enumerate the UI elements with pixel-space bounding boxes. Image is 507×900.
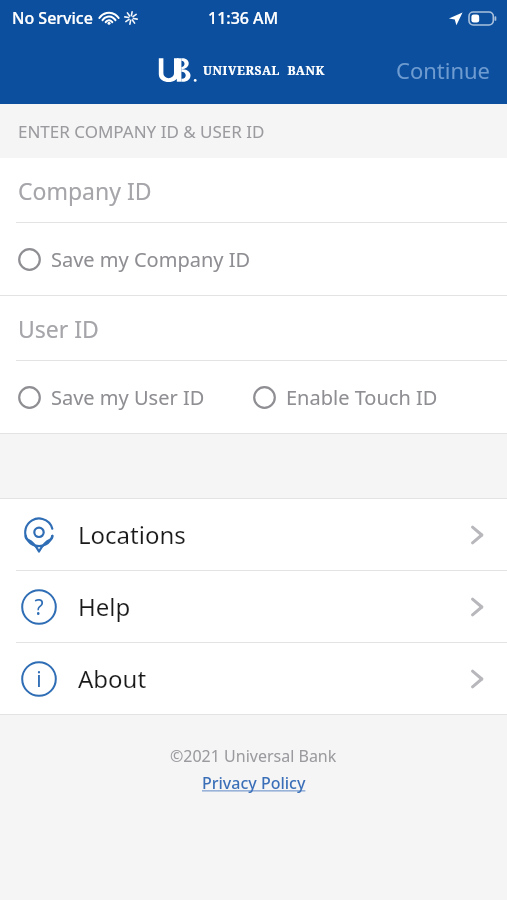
- staticText: 11:36 AM: [208, 7, 279, 29]
- staticText: UNIVERSAL BANK: [203, 62, 325, 78]
- staticText: ENTER COMPANY ID & USER ID: [18, 120, 265, 143]
- staticText: No Service: [12, 7, 93, 29]
- staticText: ©2021 Universal Bank: [170, 745, 337, 767]
- button[interactable]: Privacy Policy: [196, 770, 312, 796]
- other: Locations: [24, 517, 54, 553]
- staticText: Save my User ID: [51, 384, 205, 411]
- button[interactable]: About: [0, 643, 507, 714]
- button[interactable]: User ID: [0, 296, 507, 360]
- staticText: Help: [78, 590, 131, 623]
- staticText: ?: [34, 593, 44, 622]
- staticText: Continue: [396, 55, 491, 85]
- button[interactable]: Help: [0, 571, 507, 642]
- button[interactable]: Continue: [380, 45, 507, 95]
- button[interactable]: Company ID: [0, 158, 507, 222]
- button[interactable]: Locations: [0, 499, 507, 570]
- button[interactable]: Save my Company ID: [18, 223, 253, 295]
- staticText: Company ID: [18, 175, 152, 206]
- staticText: Privacy Policy: [202, 772, 306, 794]
- button[interactable]: Enable Touch ID: [253, 361, 507, 433]
- staticText: About: [78, 662, 147, 695]
- other: Help: [21, 589, 57, 625]
- other: About: [21, 661, 57, 697]
- staticText: User ID: [18, 313, 99, 344]
- staticText: Enable Touch ID: [286, 384, 438, 411]
- staticText: Save my Company ID: [51, 246, 251, 273]
- staticText: i: [36, 665, 42, 694]
- staticText: Locations: [78, 518, 186, 551]
- button[interactable]: Save my User ID: [18, 361, 253, 433]
